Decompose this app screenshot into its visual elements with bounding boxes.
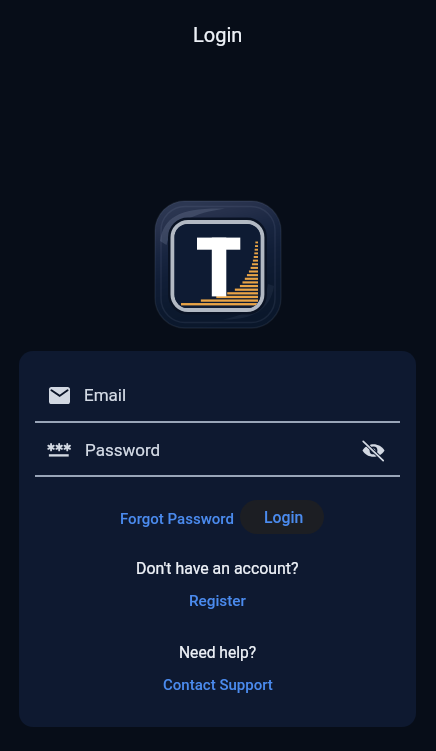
staticText: Login [193,23,243,46]
button[interactable]: Email [19,380,416,410]
button[interactable]: Register [181,589,254,613]
staticText: Email [84,385,127,405]
button[interactable]: Login [240,500,324,534]
staticText: Password [85,440,161,460]
button[interactable]: Contact Support [155,673,281,697]
staticText: Forgot Password [120,510,234,528]
button[interactable]: Toggle password visibility [357,435,389,467]
button[interactable]: Forgot Password [114,504,240,534]
button[interactable]: Password [19,435,416,465]
staticText: Register [189,592,246,610]
staticText: Contact Support [163,676,273,694]
staticText: Login [264,508,304,527]
staticText: Don't have an account? [136,559,299,578]
staticText: Need help? [179,644,257,662]
